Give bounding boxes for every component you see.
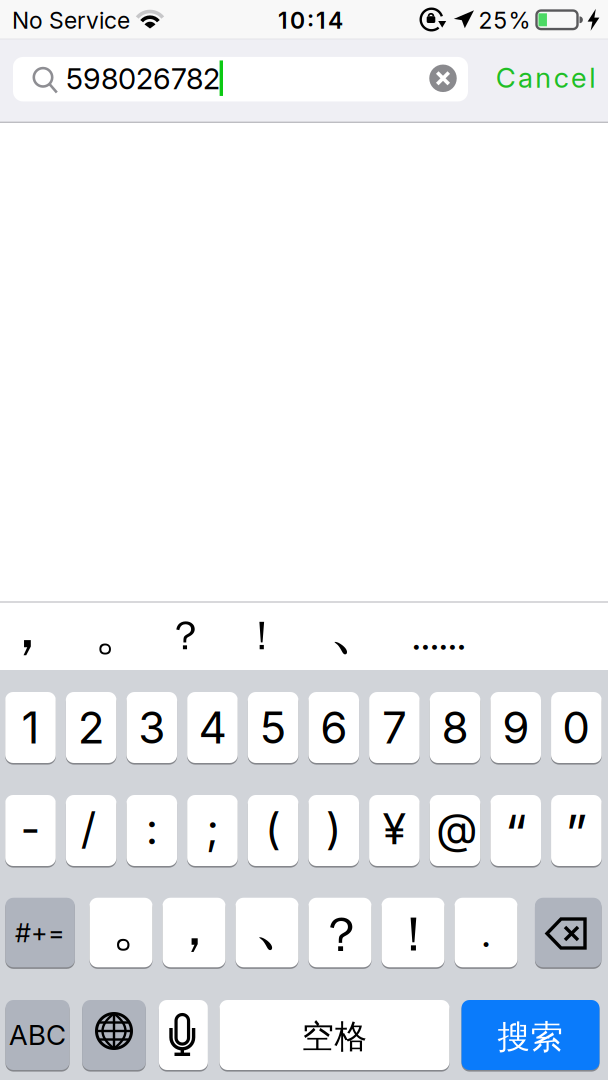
- staticText: 空格: [301, 1016, 367, 1057]
- button[interactable]: ！: [242, 611, 282, 661]
- staticText: ！: [242, 611, 282, 661]
- button[interactable]: ？: [308, 898, 371, 967]
- button[interactable]: 。: [89, 898, 152, 967]
- staticText: 搜索: [497, 1017, 563, 1058]
- button[interactable]: 7: [369, 692, 420, 763]
- staticText: /: [81, 802, 96, 854]
- staticText: 3: [138, 701, 165, 754]
- button[interactable]: 8: [430, 692, 480, 763]
- button[interactable]: Cancel: [496, 61, 595, 94]
- button[interactable]: ，: [0, 587, 58, 665]
- button[interactable]: Next keyboard: [82, 1000, 146, 1070]
- button[interactable]: ”: [551, 795, 602, 866]
- staticText: 5: [260, 701, 287, 754]
- button[interactable]: ？: [166, 611, 206, 661]
- staticText: .: [481, 908, 490, 957]
- staticText: No Service: [12, 7, 130, 34]
- button[interactable]: 6: [308, 692, 359, 763]
- staticText: 8: [442, 701, 469, 754]
- staticText: @: [436, 802, 478, 854]
- staticText: 4: [198, 701, 226, 754]
- button[interactable]: 。: [94, 599, 146, 664]
- button[interactable]: Search field: [13, 57, 468, 101]
- button[interactable]: 1: [5, 692, 56, 763]
- button[interactable]: ！: [381, 898, 444, 967]
- staticText: ¥: [382, 802, 406, 854]
- button[interactable]: .: [454, 898, 517, 967]
- button[interactable]: 3: [126, 692, 177, 763]
- button[interactable]: 空格: [219, 1000, 449, 1070]
- staticText: 1 0 : 1 4: [278, 7, 343, 34]
- staticText: ): [326, 802, 342, 854]
- button[interactable]: ……: [412, 611, 466, 659]
- staticText: 2: [78, 701, 105, 754]
- staticText: 、: [253, 881, 317, 961]
- button[interactable]: ABC: [5, 1000, 69, 1070]
- button[interactable]: Delete: [535, 898, 601, 967]
- staticText: 。: [111, 891, 167, 961]
- button[interactable]: #+=: [5, 898, 75, 967]
- staticText: ;: [206, 802, 219, 854]
- staticText: ”: [565, 803, 587, 864]
- button[interactable]: ¥: [369, 795, 420, 866]
- staticText: (: [265, 802, 281, 854]
- staticText: 598026782: [66, 61, 220, 96]
- staticText: #+=: [15, 918, 65, 948]
- button[interactable]: 5: [248, 692, 298, 763]
- button[interactable]: ;: [187, 795, 238, 866]
- staticText: 0: [562, 701, 590, 754]
- staticText: 、: [329, 587, 391, 665]
- staticText: Cancel: [496, 61, 595, 94]
- button[interactable]: 9: [490, 692, 541, 763]
- button[interactable]: 2: [66, 692, 116, 763]
- button[interactable]: Clear text: [429, 64, 457, 92]
- staticText: ！: [390, 904, 438, 965]
- button[interactable]: -: [5, 795, 56, 866]
- staticText: “: [505, 803, 527, 864]
- staticText: 6: [320, 701, 347, 754]
- button[interactable]: (: [248, 795, 298, 866]
- button[interactable]: Dictate: [159, 1000, 208, 1070]
- staticText: 9: [502, 701, 529, 754]
- staticText: 7: [382, 701, 407, 754]
- staticText: 。: [94, 599, 146, 664]
- button[interactable]: 搜索: [461, 1000, 599, 1070]
- staticText: ，: [0, 587, 58, 665]
- staticText: ？: [317, 905, 365, 965]
- staticText: ABC: [9, 1018, 66, 1052]
- staticText: 1: [21, 701, 39, 754]
- button[interactable]: 、: [235, 898, 298, 967]
- button[interactable]: 4: [187, 692, 238, 763]
- staticText: ？: [166, 611, 206, 661]
- button[interactable]: 0: [551, 692, 602, 763]
- staticText: -: [20, 802, 40, 854]
- button[interactable]: ): [308, 795, 359, 866]
- staticText: ，: [166, 891, 222, 961]
- staticText: 25%: [478, 7, 530, 34]
- staticText: ……: [412, 611, 466, 659]
- button[interactable]: @: [430, 795, 480, 866]
- button[interactable]: “: [490, 795, 541, 866]
- button[interactable]: 、: [329, 587, 391, 665]
- button[interactable]: /: [66, 795, 116, 866]
- staticText: :: [146, 802, 158, 854]
- button[interactable]: ，: [162, 898, 225, 967]
- button[interactable]: :: [126, 795, 177, 866]
